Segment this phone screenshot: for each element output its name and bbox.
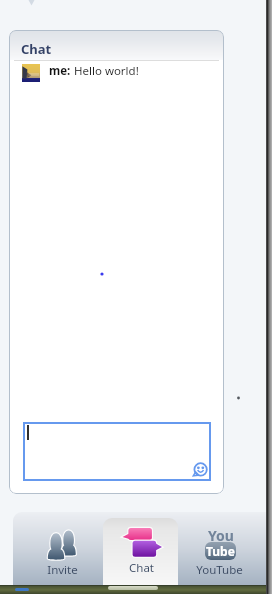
staticText: Tube xyxy=(206,543,235,559)
staticText: Hello world! xyxy=(71,63,139,79)
staticText: You xyxy=(208,526,234,542)
button[interactable]: Invite xyxy=(22,512,101,585)
button[interactable]: Chat xyxy=(101,512,180,585)
button[interactable]: Insert emoticon xyxy=(23,422,211,481)
staticText: Chat xyxy=(21,40,52,58)
staticText: me: xyxy=(49,63,71,79)
button[interactable]: Insert emoticon xyxy=(192,462,208,478)
staticText: Invite xyxy=(47,562,78,578)
staticText: YouTube xyxy=(196,562,243,578)
button[interactable]: You xyxy=(180,512,259,585)
staticText: Chat xyxy=(129,560,154,576)
